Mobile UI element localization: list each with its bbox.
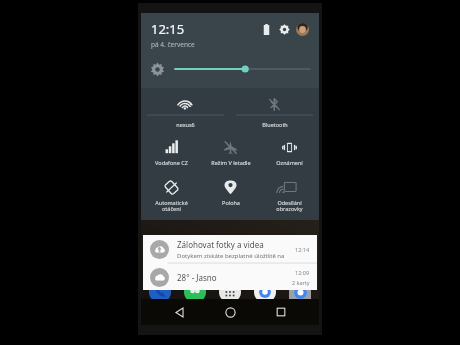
staticText: Automatické otáčení bbox=[155, 199, 188, 213]
button[interactable]: nexus6 bbox=[141, 95, 230, 133]
button[interactable]: Home bbox=[217, 299, 243, 325]
staticText: Poloha bbox=[222, 199, 240, 206]
button[interactable]: Oznámení bbox=[260, 137, 319, 174]
staticText: 12:09 bbox=[295, 269, 310, 276]
button[interactable]: Settings bbox=[275, 20, 293, 38]
button[interactable]: Odesílání obrazovky bbox=[260, 177, 319, 218]
staticText: 2 karty bbox=[292, 279, 310, 286]
staticText: nexus6 bbox=[176, 121, 195, 128]
button[interactable]: Battery bbox=[257, 20, 275, 38]
staticText: pá 4. července bbox=[151, 40, 195, 49]
staticText: Režim V letadle bbox=[211, 159, 251, 166]
staticText: Vodafone CZ bbox=[155, 159, 188, 166]
staticText: Zálohovat fotky a videa bbox=[177, 239, 264, 250]
button[interactable]: Zálohovat fotky a videa bbox=[143, 235, 317, 263]
button[interactable]: Automatické otáčení bbox=[141, 177, 201, 218]
button[interactable]: 28° - Jasno bbox=[143, 264, 317, 290]
staticText: Oznámení bbox=[276, 159, 303, 166]
staticText: 28° - Jasno bbox=[177, 272, 292, 283]
staticText: Odesílání obrazovky bbox=[276, 199, 303, 213]
staticText: Bluetooth bbox=[262, 121, 288, 128]
button[interactable]: Poloha bbox=[201, 177, 260, 218]
button[interactable]: User profile bbox=[293, 20, 311, 38]
button[interactable]: Brightness bbox=[150, 56, 310, 82]
staticText: 12:15 bbox=[151, 20, 185, 38]
button[interactable]: Recent apps bbox=[268, 299, 294, 325]
button[interactable]: Back bbox=[166, 299, 192, 325]
staticText: Dotykem získáte bezplatné úložiště na Go… bbox=[177, 252, 291, 260]
staticText: 12:14 bbox=[295, 246, 310, 253]
button[interactable]: Bluetooth bbox=[230, 95, 319, 133]
button[interactable]: Režim V letadle bbox=[201, 137, 260, 174]
button[interactable]: Vodafone CZ bbox=[141, 137, 201, 174]
